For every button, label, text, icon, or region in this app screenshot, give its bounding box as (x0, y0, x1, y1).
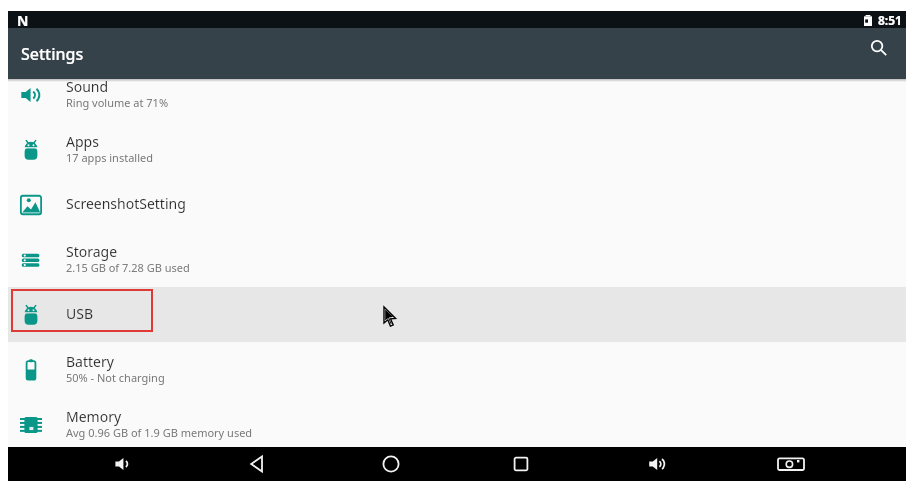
button[interactable] (374, 447, 408, 481)
button[interactable] (774, 447, 808, 481)
button[interactable]: Sound (8, 79, 906, 122)
staticText: Avg 0.96 GB of 1.9 GB memory used (66, 425, 253, 440)
button[interactable] (862, 37, 896, 71)
button[interactable] (106, 447, 140, 481)
staticText: Ring volume at 71% (66, 95, 169, 110)
button[interactable]: Apps (8, 122, 906, 177)
staticText: Memory (66, 410, 122, 425)
staticText: Apps (66, 135, 99, 150)
staticText: 8:51 (878, 12, 902, 28)
button[interactable]: USB (8, 287, 906, 342)
button[interactable] (641, 447, 675, 481)
button[interactable] (504, 447, 538, 481)
button[interactable]: Storage (8, 232, 906, 287)
staticText: 17 apps installed (66, 150, 153, 165)
staticText: ScreenshotSetting (66, 197, 186, 212)
button[interactable]: Battery (8, 342, 906, 397)
staticText: USB (66, 307, 94, 322)
staticText: Battery (66, 355, 114, 370)
staticText: Storage (66, 245, 118, 260)
staticText: N (17, 11, 29, 28)
button[interactable] (241, 447, 275, 481)
staticText: 2.15 GB of 7.28 GB used (66, 260, 190, 275)
button[interactable]: Memory (8, 397, 906, 447)
staticText: Sound (66, 80, 109, 95)
staticText: 50% - Not charging (66, 370, 165, 385)
staticText: Settings (21, 43, 84, 65)
button[interactable]: ScreenshotSetting (8, 177, 906, 232)
